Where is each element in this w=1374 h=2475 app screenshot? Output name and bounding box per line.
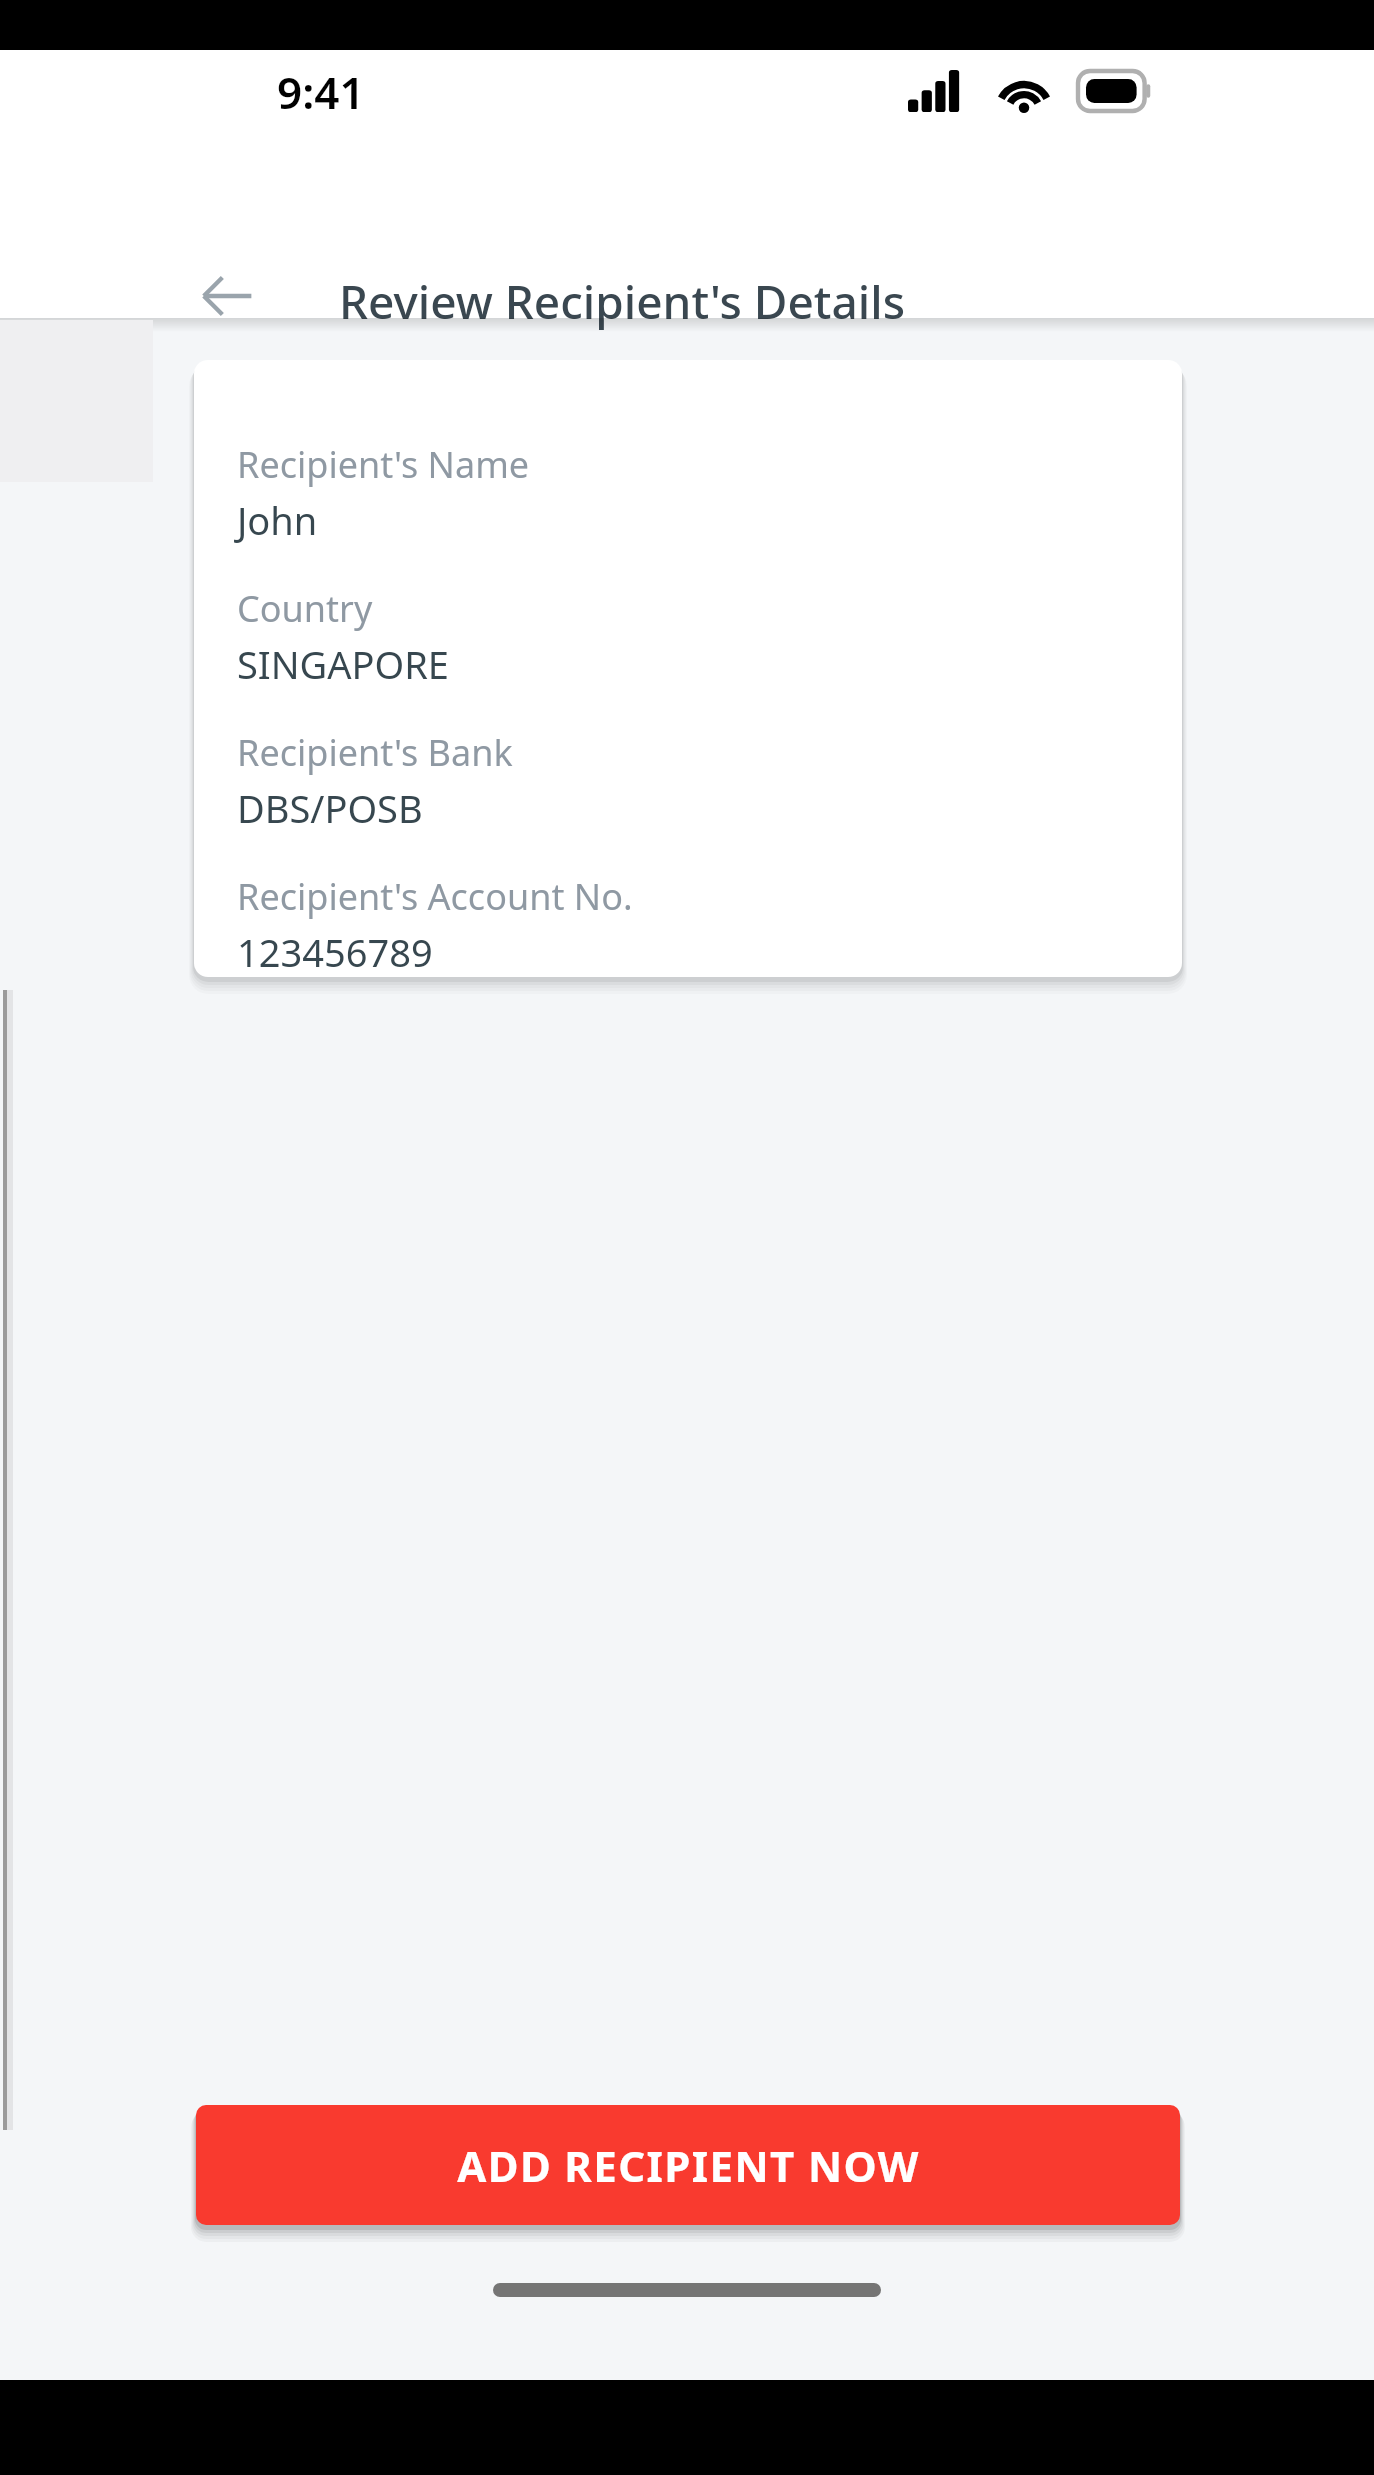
staticText: 9:41: [277, 62, 365, 122]
staticText: Review Recipient's Details: [339, 270, 905, 333]
staticText: Country: [237, 584, 373, 633]
staticText: SINGAPORE: [237, 638, 450, 690]
button[interactable]: Back: [179, 248, 275, 344]
staticText: DBS/POSB: [237, 782, 423, 834]
staticText: Recipient's Bank: [237, 728, 513, 777]
staticText: Recipient's Name: [237, 440, 530, 489]
staticText: 123456789: [237, 926, 433, 977]
staticText: John: [237, 494, 318, 546]
staticText: ADD RECIPIENT NOW: [457, 2137, 920, 2194]
button[interactable]: ADD RECIPIENT NOW: [196, 2105, 1180, 2225]
staticText: Recipient's Account No.: [237, 872, 633, 921]
